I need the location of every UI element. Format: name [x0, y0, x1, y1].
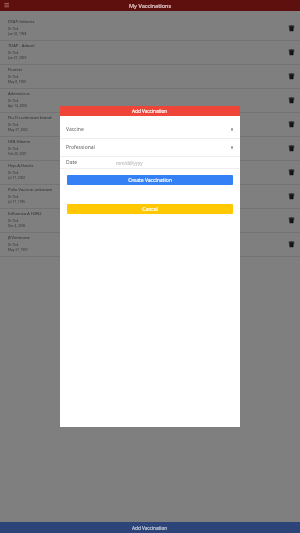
button[interactable]: Delete vaccination	[288, 193, 295, 200]
button[interactable]: Delete vaccination	[288, 169, 295, 176]
staticText: Dr. Ted	[8, 171, 19, 175]
button[interactable]: TDAP - Adacel	[0, 41, 300, 65]
staticText: Cancel	[142, 206, 158, 213]
staticText: Add Vaccination	[132, 525, 168, 531]
staticText: JEVimmune	[8, 235, 30, 241]
button[interactable]: Flu-Tri-unknown brand	[0, 113, 300, 137]
staticText: Dr. Ted	[8, 27, 19, 31]
staticText: Apr 14, 2000	[8, 104, 27, 108]
staticText: May 27, 2002	[8, 128, 28, 132]
staticText: Flumist	[8, 67, 23, 73]
staticText: Jun 27, 2009	[8, 56, 27, 60]
staticText: Date	[66, 159, 78, 166]
button[interactable]: DTAP-Infanrix	[0, 17, 300, 41]
button[interactable]: HIB-Hiberix	[0, 137, 300, 161]
button[interactable]: Delete vaccination	[288, 145, 295, 152]
staticText: Adenovirus	[8, 91, 30, 97]
button[interactable]: Delete vaccination	[288, 73, 295, 80]
staticText: Vaccine	[66, 126, 84, 133]
staticText: My Vaccinations	[129, 2, 172, 10]
button[interactable]: Delete vaccination	[288, 217, 295, 224]
staticText: Dr. Ted	[8, 243, 19, 247]
button[interactable]: Open navigation menu	[1, 0, 12, 11]
staticText: Flu-Tri-unknown brand	[8, 115, 52, 121]
staticText: Professional	[66, 144, 95, 151]
staticText: Jul 17, 2002	[8, 176, 26, 180]
staticText: Dr. Ted	[8, 51, 19, 55]
staticText: Dr. Ted	[8, 147, 19, 151]
staticText: Create Vaccination	[128, 177, 172, 184]
staticText: Influenza A H3N2	[8, 211, 42, 217]
button[interactable]: JEVimmune	[0, 233, 300, 257]
button[interactable]: Add Vaccination	[0, 522, 300, 533]
staticText: Dr. Ted	[8, 99, 19, 103]
button[interactable]: Professional	[60, 139, 240, 157]
button[interactable]: Delete vaccination	[288, 49, 295, 56]
staticText: Dec 4, 2006	[8, 224, 26, 228]
staticText: Dr. Ted	[8, 195, 19, 199]
button[interactable]: Hep-A-Havrix	[0, 161, 300, 185]
staticText: Dr. Ted	[8, 123, 19, 127]
button[interactable]: Delete vaccination	[288, 25, 295, 32]
staticText: Jun 02, 1998	[8, 32, 27, 36]
button[interactable]: Flumist	[0, 65, 300, 89]
button[interactable]: Create Vaccination	[67, 175, 233, 185]
staticText: HIB-Hiberix	[8, 139, 31, 145]
staticText: Hep-A-Havrix	[8, 163, 34, 169]
staticText: Dr. Ted	[8, 219, 19, 223]
staticText: Dr. Ted	[8, 75, 19, 79]
staticText: mm/dd/yyyy	[116, 160, 143, 166]
staticText: Polio Vaccine-unknown	[8, 187, 53, 193]
staticText: Jul 17, 1995	[8, 200, 26, 204]
button[interactable]: Influenza A H3N2	[0, 209, 300, 233]
staticText: Feb 20, 2001	[8, 152, 27, 156]
staticText: DTAP-Infanrix	[8, 19, 35, 25]
button[interactable]: Delete vaccination	[288, 121, 295, 128]
button[interactable]: Cancel	[67, 204, 233, 214]
button[interactable]: Date	[60, 157, 240, 169]
button[interactable]: Polio Vaccine-unknown	[0, 185, 300, 209]
staticText: May 8, 1999	[8, 80, 26, 84]
staticText: Add Vaccination	[132, 108, 168, 114]
button[interactable]: Vaccine	[60, 121, 240, 139]
button[interactable]: Delete vaccination	[288, 241, 295, 248]
button[interactable]: Adenovirus	[0, 89, 300, 113]
staticText: May 27, 1997	[8, 248, 28, 252]
staticText: TDAP - Adacel	[8, 43, 35, 49]
button[interactable]: Delete vaccination	[288, 97, 295, 104]
